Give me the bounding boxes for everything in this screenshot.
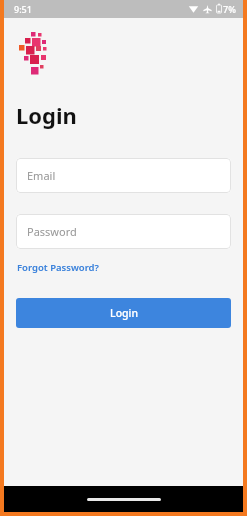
staticText: 9:51 <box>14 3 32 15</box>
staticText: 7% <box>223 3 236 15</box>
other: Home gesture <box>87 498 161 501</box>
staticText: Login <box>110 306 138 320</box>
button[interactable]: Email <box>16 158 231 193</box>
button[interactable]: Forgot Password? <box>16 259 100 276</box>
button[interactable]: Login <box>16 298 231 328</box>
staticText: Forgot Password? <box>17 261 99 274</box>
staticText: Email <box>27 168 56 183</box>
button[interactable]: Password <box>16 214 231 249</box>
staticText: Login <box>16 100 77 130</box>
staticText: Password <box>27 224 77 239</box>
